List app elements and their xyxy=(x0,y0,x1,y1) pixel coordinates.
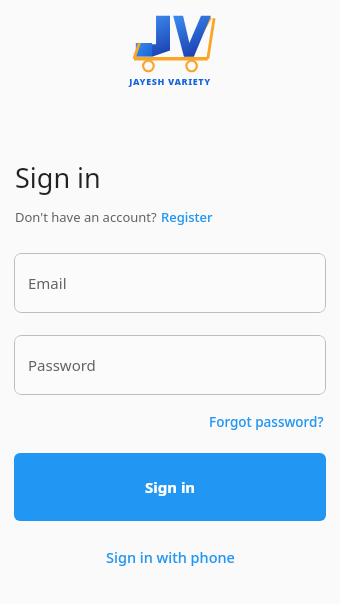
staticText: JAYESH VARIETY xyxy=(129,75,211,87)
staticText: Email xyxy=(28,273,67,293)
button[interactable]: Password xyxy=(14,335,326,395)
button[interactable]: Forgot password? xyxy=(209,409,340,435)
staticText: Forgot password? xyxy=(209,413,324,431)
staticText: Sign in with phone xyxy=(106,547,235,567)
button[interactable]: Register xyxy=(161,208,213,226)
button[interactable]: Sign in with phone xyxy=(94,541,247,573)
staticText: Password xyxy=(28,355,96,375)
staticText: Sign in xyxy=(145,477,196,497)
button[interactable]: Email xyxy=(14,253,326,313)
other: Jayesh Variety logo xyxy=(125,12,215,74)
staticText: Don't have an account? xyxy=(15,208,161,226)
button[interactable]: Sign in xyxy=(14,453,326,521)
staticText: Sign in xyxy=(15,159,101,196)
staticText: Register xyxy=(161,208,213,226)
